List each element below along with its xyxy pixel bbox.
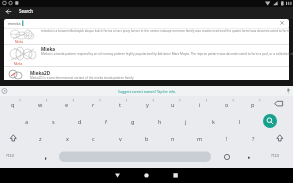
staticText: o xyxy=(225,101,229,108)
button[interactable]: d xyxy=(67,113,93,129)
staticText: c xyxy=(92,135,95,142)
staticText: p xyxy=(251,101,255,108)
staticText: v xyxy=(119,135,122,142)
button[interactable]: x xyxy=(54,130,80,146)
staticText: s xyxy=(52,118,55,125)
button[interactable]: f xyxy=(93,113,119,129)
staticText: k xyxy=(212,118,215,125)
staticText: Mieka2D xyxy=(30,70,51,76)
button[interactable]: v xyxy=(107,130,133,146)
staticText: mieoka is a brownishbolaqish abque bolch… xyxy=(41,29,290,33)
button[interactable]: c xyxy=(80,130,106,146)
button[interactable] xyxy=(4,45,289,67)
staticText: g xyxy=(131,118,135,125)
staticText: y xyxy=(146,101,149,108)
staticText: Search xyxy=(19,8,34,14)
button[interactable] xyxy=(110,168,125,183)
button[interactable]: r xyxy=(80,96,106,112)
button[interactable]: i xyxy=(187,96,213,112)
staticText: ? xyxy=(252,135,255,142)
button[interactable]: u xyxy=(160,96,186,112)
button[interactable] xyxy=(139,168,154,183)
button[interactable]: e xyxy=(54,96,80,112)
button[interactable]: n xyxy=(160,130,186,146)
staticText: u xyxy=(171,101,175,108)
staticText: Mieka is a tanda pattern inspired by an … xyxy=(41,52,293,56)
staticText: mieoka xyxy=(8,21,21,26)
button[interactable]: g xyxy=(120,113,146,129)
staticText: h xyxy=(158,118,162,125)
staticText: ?123 xyxy=(6,153,14,158)
button[interactable] xyxy=(4,19,289,29)
staticText: Mieka xyxy=(41,46,56,52)
staticText: t xyxy=(119,101,121,108)
staticText: ! xyxy=(226,135,228,142)
button[interactable]: s xyxy=(40,113,66,129)
staticText: Mieka xyxy=(15,40,24,44)
staticText: x xyxy=(66,135,69,142)
button[interactable] xyxy=(4,29,289,45)
button[interactable] xyxy=(263,114,277,128)
staticText: i xyxy=(199,101,201,108)
button[interactable]: z xyxy=(27,130,53,146)
staticText: Suggest correct names? Tap for info. xyxy=(118,89,176,94)
button[interactable]: h xyxy=(147,113,173,129)
staticText: m xyxy=(197,135,203,142)
staticText: Mieka xyxy=(14,62,23,66)
staticText: w xyxy=(38,101,43,108)
staticText: n xyxy=(171,135,175,142)
button[interactable] xyxy=(3,7,17,19)
staticText: r xyxy=(92,101,95,108)
staticText: j xyxy=(185,118,187,125)
staticText: a xyxy=(25,118,29,125)
button[interactable]: w xyxy=(27,96,53,112)
button[interactable]: l xyxy=(227,113,253,129)
button[interactable]: p xyxy=(240,96,266,112)
button[interactable]: y xyxy=(134,96,160,112)
button[interactable]: a xyxy=(14,113,40,129)
staticText: d xyxy=(78,118,82,125)
staticText: Mieka2D is a two dimensional variant of … xyxy=(30,76,134,80)
staticText: e xyxy=(65,101,69,108)
button[interactable]: q xyxy=(0,96,26,112)
button[interactable]: b xyxy=(134,130,160,146)
staticText: l xyxy=(239,118,241,125)
staticText: ?123 xyxy=(271,153,279,158)
staticText: f xyxy=(105,118,107,125)
button[interactable]: o xyxy=(214,96,240,112)
button[interactable]: m xyxy=(187,130,213,146)
button[interactable]: t xyxy=(107,96,133,112)
staticText: z xyxy=(39,135,42,142)
staticText: q xyxy=(11,101,15,108)
button[interactable]: k xyxy=(200,113,226,129)
staticText: b xyxy=(145,135,149,142)
button[interactable]: j xyxy=(173,113,199,129)
button[interactable] xyxy=(168,168,183,183)
button[interactable]: ! xyxy=(214,130,240,146)
button[interactable]: ? xyxy=(240,130,266,146)
button[interactable] xyxy=(4,67,289,80)
